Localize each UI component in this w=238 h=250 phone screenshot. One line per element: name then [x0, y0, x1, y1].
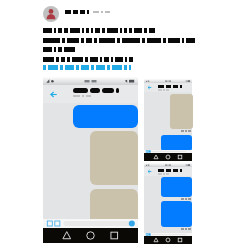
button[interactable]: Back — [144, 79, 192, 161]
other: Back — [49, 90, 58, 99]
button[interactable] — [65, 10, 110, 14]
other: Back — [147, 169, 152, 174]
button[interactable]: Back — [144, 163, 192, 244]
button[interactable]: Back — [43, 77, 138, 243]
other: Back — [147, 85, 152, 90]
button[interactable] — [43, 65, 131, 70]
